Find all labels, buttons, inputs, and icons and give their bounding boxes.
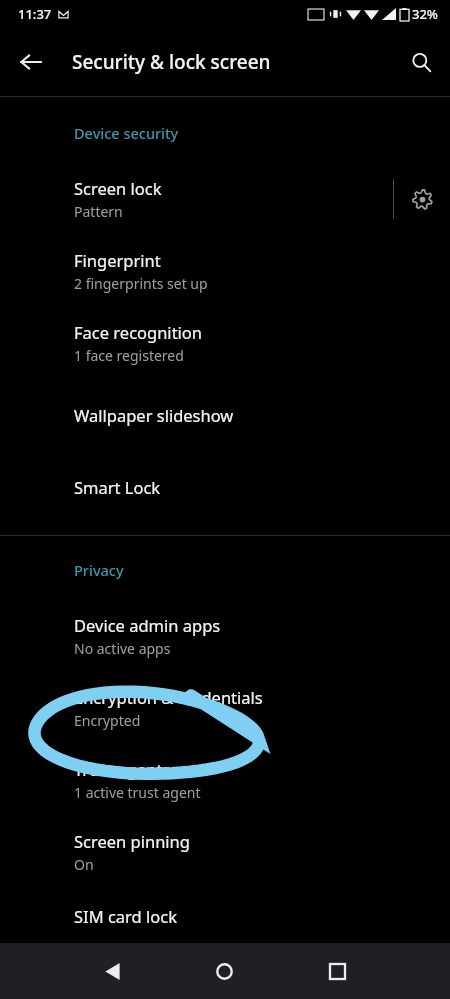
button[interactable]: Home (168, 943, 281, 999)
staticText: Security & lock screen (72, 49, 271, 75)
button[interactable]: Screen lock settings (394, 171, 450, 227)
staticText: Fingerprint (74, 249, 161, 271)
button[interactable]: Wallpaper slideshow (0, 379, 450, 451)
staticText: Pattern (74, 202, 123, 221)
staticText: Wallpaper slideshow (74, 404, 234, 426)
button[interactable]: Back (56, 943, 168, 999)
staticText: Device security (74, 123, 179, 143)
staticText: Encrypted (74, 711, 141, 730)
staticText: Screen lock (74, 177, 162, 199)
button[interactable]: Smart Lock (0, 451, 450, 523)
button[interactable]: Back (10, 41, 52, 83)
button[interactable]: SIM card lock (0, 888, 450, 943)
staticText: No active apps (74, 639, 171, 658)
staticText: Device admin apps (74, 614, 221, 636)
staticText: 32% (412, 5, 438, 23)
staticText: Smart Lock (74, 476, 161, 498)
staticText: Face recognition (74, 321, 203, 343)
button[interactable]: Face recognition (0, 307, 450, 379)
button[interactable]: Screen pinning (0, 816, 450, 888)
staticText: Privacy (74, 560, 124, 580)
staticText: 2 fingerprints set up (74, 274, 208, 293)
staticText: 11:37 (18, 5, 52, 23)
button[interactable]: Search (400, 41, 442, 83)
staticText: On (74, 855, 94, 874)
button[interactable]: Fingerprint (0, 235, 450, 307)
staticText: 1 active trust agent (74, 783, 201, 802)
button[interactable]: Recent apps (281, 943, 394, 999)
staticText: Trust agents (74, 758, 171, 780)
button[interactable]: Trust agents (0, 744, 450, 816)
staticText: Encryption & credentials (74, 686, 263, 708)
staticText: 1 face registered (74, 346, 184, 365)
button[interactable]: Encryption & credentials (0, 672, 450, 744)
staticText: SIM card lock (74, 905, 177, 927)
button[interactable]: Screen lock (0, 163, 450, 235)
button[interactable]: Device admin apps (0, 600, 450, 672)
staticText: Screen pinning (74, 830, 190, 852)
